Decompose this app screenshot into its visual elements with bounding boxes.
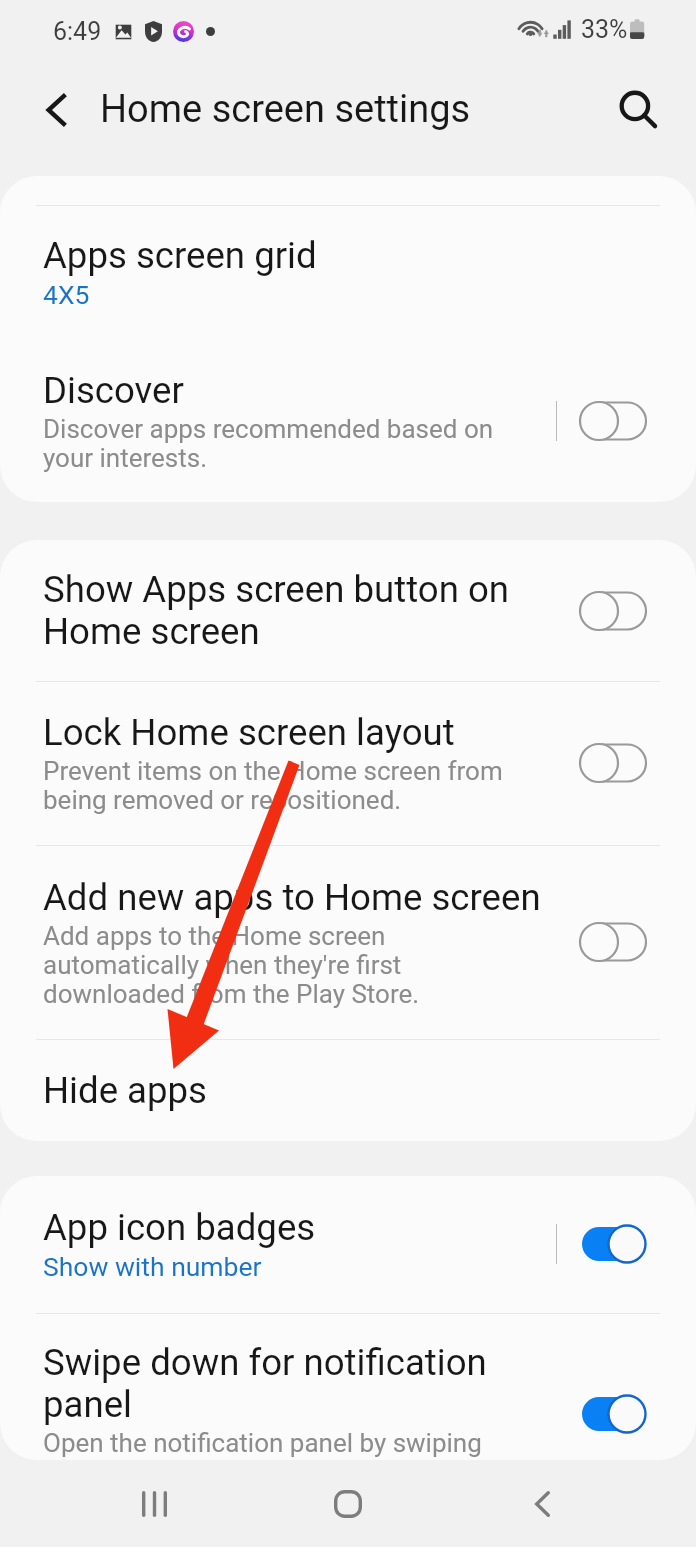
button[interactable]: Add new apps to Home screen — [579, 920, 647, 964]
staticText: 33% — [581, 15, 628, 44]
button[interactable]: App icon badges — [579, 1222, 647, 1266]
staticText: Add new apps to Home screen — [43, 876, 541, 919]
button[interactable]: Show Apps screen button on Home screen — [0, 540, 696, 681]
button[interactable]: Swipe down for notification panel — [0, 1313, 696, 1460]
button[interactable]: Recent apps — [100, 1460, 208, 1547]
button[interactable]: Discover — [0, 339, 696, 502]
staticText: 4X5 — [43, 279, 90, 310]
button[interactable]: Home — [294, 1460, 402, 1547]
button[interactable]: Add new apps to Home screen — [0, 845, 696, 1039]
staticText: 6:49 — [53, 17, 102, 46]
button[interactable]: App icon badges — [0, 1176, 696, 1312]
button[interactable]: Navigate up — [47, 93, 67, 127]
staticText: Show with number — [43, 1251, 262, 1282]
staticText: Open the notification panel by swiping w… — [43, 1428, 482, 1460]
staticText: Swipe down for notification panel — [43, 1341, 487, 1426]
staticText: Home screen settings — [100, 87, 471, 132]
staticText: App icon badges — [43, 1206, 316, 1249]
staticText: Prevent items on the Home screen from be… — [43, 756, 503, 815]
staticText: Lock Home screen layout — [43, 711, 455, 754]
button[interactable]: Lock Home screen layout — [579, 741, 647, 785]
button[interactable]: Hide apps — [0, 1039, 696, 1141]
staticText: Add apps to the Home screen automaticall… — [43, 921, 420, 1009]
staticText: Discover apps recommended based on your … — [43, 414, 494, 473]
staticText: Show Apps screen button on Home screen — [43, 568, 509, 653]
button[interactable]: Search — [616, 90, 658, 132]
button[interactable]: Back — [488, 1460, 596, 1547]
button[interactable]: Apps screen grid — [0, 205, 696, 339]
staticText: Discover — [43, 369, 184, 412]
button[interactable]: Swipe down for notification panel — [579, 1392, 647, 1436]
staticText: Apps screen grid — [43, 234, 317, 277]
staticText: Hide apps — [43, 1069, 208, 1112]
button[interactable]: Discover — [579, 399, 647, 443]
button[interactable]: Show Apps screen button on Home screen — [579, 589, 647, 633]
button[interactable]: Lock Home screen layout — [0, 681, 696, 845]
